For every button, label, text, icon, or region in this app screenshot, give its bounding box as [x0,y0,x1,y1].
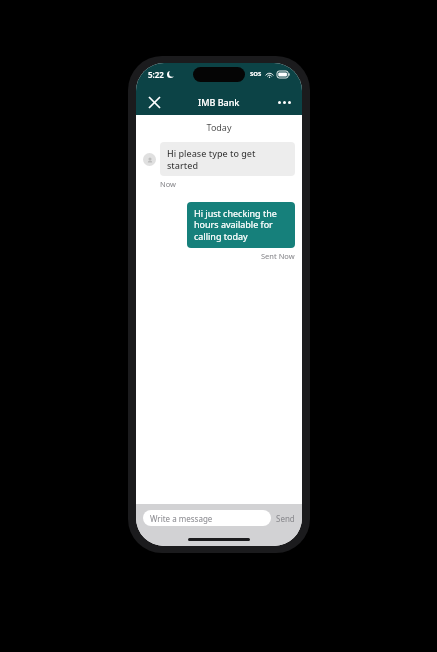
staticText: Sent Now [261,251,295,261]
button[interactable]: More options [272,90,296,114]
button[interactable]: Send [276,510,295,526]
staticText: IMB Bank [198,96,240,108]
staticText: Hi please type to get started [167,147,288,171]
staticText: 5:22 [148,69,164,80]
staticText: SOS [250,70,262,78]
button[interactable]: Hi just checking the hours available for… [187,202,295,248]
staticText: Now [160,179,176,189]
button[interactable]: Write a message [143,510,271,526]
staticText: Send [276,513,295,524]
button[interactable]: Close [142,90,166,114]
staticText: Today [143,121,295,133]
button[interactable]: Hi please type to get started [160,142,295,176]
staticText: Hi just checking the hours available for… [194,207,288,243]
staticText: Write a message [150,513,213,524]
